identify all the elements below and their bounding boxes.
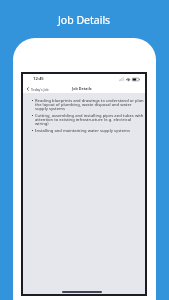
staticText: 12:45: [33, 76, 44, 82]
button[interactable]: Today's Job: [23, 87, 53, 91]
staticText: Cutting, assembling and installing pipes…: [35, 113, 144, 127]
staticText: Job Details: [58, 13, 111, 27]
staticText: Job Details: [72, 86, 92, 91]
staticText: Installing and maintaining water supply …: [35, 128, 130, 134]
staticText: Today's Job: [31, 87, 49, 91]
staticText: Reading blueprints and drawings to under…: [35, 98, 144, 112]
